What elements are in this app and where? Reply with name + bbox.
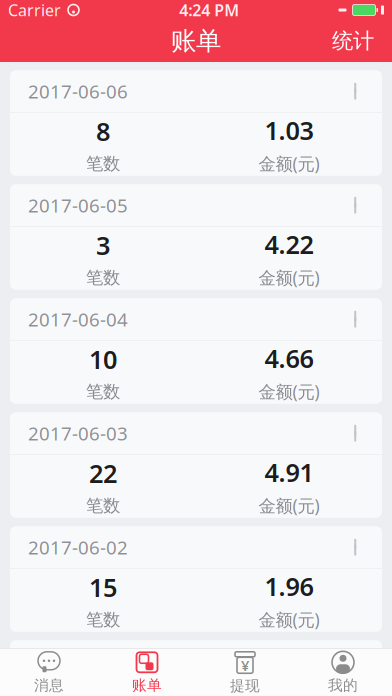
staticText: 2017-06-03 bbox=[28, 421, 128, 446]
staticText: ¥ bbox=[241, 656, 249, 675]
staticText: 4.66 bbox=[264, 341, 313, 375]
staticText: 金额(元) bbox=[258, 380, 319, 403]
staticText: 2017-06-04 bbox=[28, 307, 128, 332]
staticText: 22 bbox=[89, 456, 117, 490]
staticText: 4:24 PM bbox=[179, 0, 239, 21]
staticText: 1.03 bbox=[264, 113, 313, 147]
staticText: 笔数 bbox=[86, 153, 120, 174]
button[interactable]: 2017-06-05 bbox=[10, 184, 382, 290]
staticText: 2017-06-02 bbox=[28, 535, 128, 560]
staticText: 笔数 bbox=[86, 267, 120, 288]
staticText: 金额(元) bbox=[258, 494, 319, 517]
button[interactable]: 我的 bbox=[294, 649, 392, 696]
button[interactable]: 2017-06-01 bbox=[10, 640, 382, 696]
staticText: 3 bbox=[96, 228, 110, 262]
staticText: 我的 bbox=[328, 676, 358, 694]
button[interactable]: 统计 bbox=[320, 20, 386, 62]
staticText: 4.91 bbox=[264, 455, 313, 489]
staticText: 2017-06-06 bbox=[28, 79, 128, 104]
staticText: 1.96 bbox=[264, 569, 313, 603]
button[interactable]: 2017-06-03 bbox=[10, 412, 382, 518]
button[interactable]: 消息 bbox=[0, 649, 98, 696]
button[interactable]: 账单 bbox=[98, 649, 196, 696]
button[interactable]: 2017-06-06 bbox=[10, 70, 382, 176]
button[interactable]: ¥ bbox=[196, 649, 294, 696]
staticText: 2017-06-05 bbox=[28, 193, 128, 218]
staticText: 10 bbox=[89, 342, 117, 376]
staticText: Carrier bbox=[8, 0, 61, 21]
button[interactable]: 2017-06-04 bbox=[10, 298, 382, 404]
staticText: 金额(元) bbox=[258, 152, 319, 175]
staticText: 统计 bbox=[332, 28, 374, 54]
staticText: 8 bbox=[96, 114, 110, 148]
staticText: 提现 bbox=[230, 677, 260, 695]
staticText: 消息 bbox=[34, 676, 64, 694]
staticText: 15 bbox=[89, 570, 117, 604]
staticText: 笔数 bbox=[86, 495, 120, 516]
button[interactable]: 2017-06-02 bbox=[10, 526, 382, 632]
staticText: 账单 bbox=[171, 25, 221, 56]
staticText: 笔数 bbox=[86, 609, 120, 630]
staticText: 4.22 bbox=[264, 227, 313, 261]
staticText: 金额(元) bbox=[258, 608, 319, 631]
staticText: 2017-06-01 bbox=[28, 649, 128, 674]
staticText: 笔数 bbox=[86, 381, 120, 402]
staticText: 金额(元) bbox=[258, 266, 319, 289]
staticText: 账单 bbox=[132, 676, 162, 694]
